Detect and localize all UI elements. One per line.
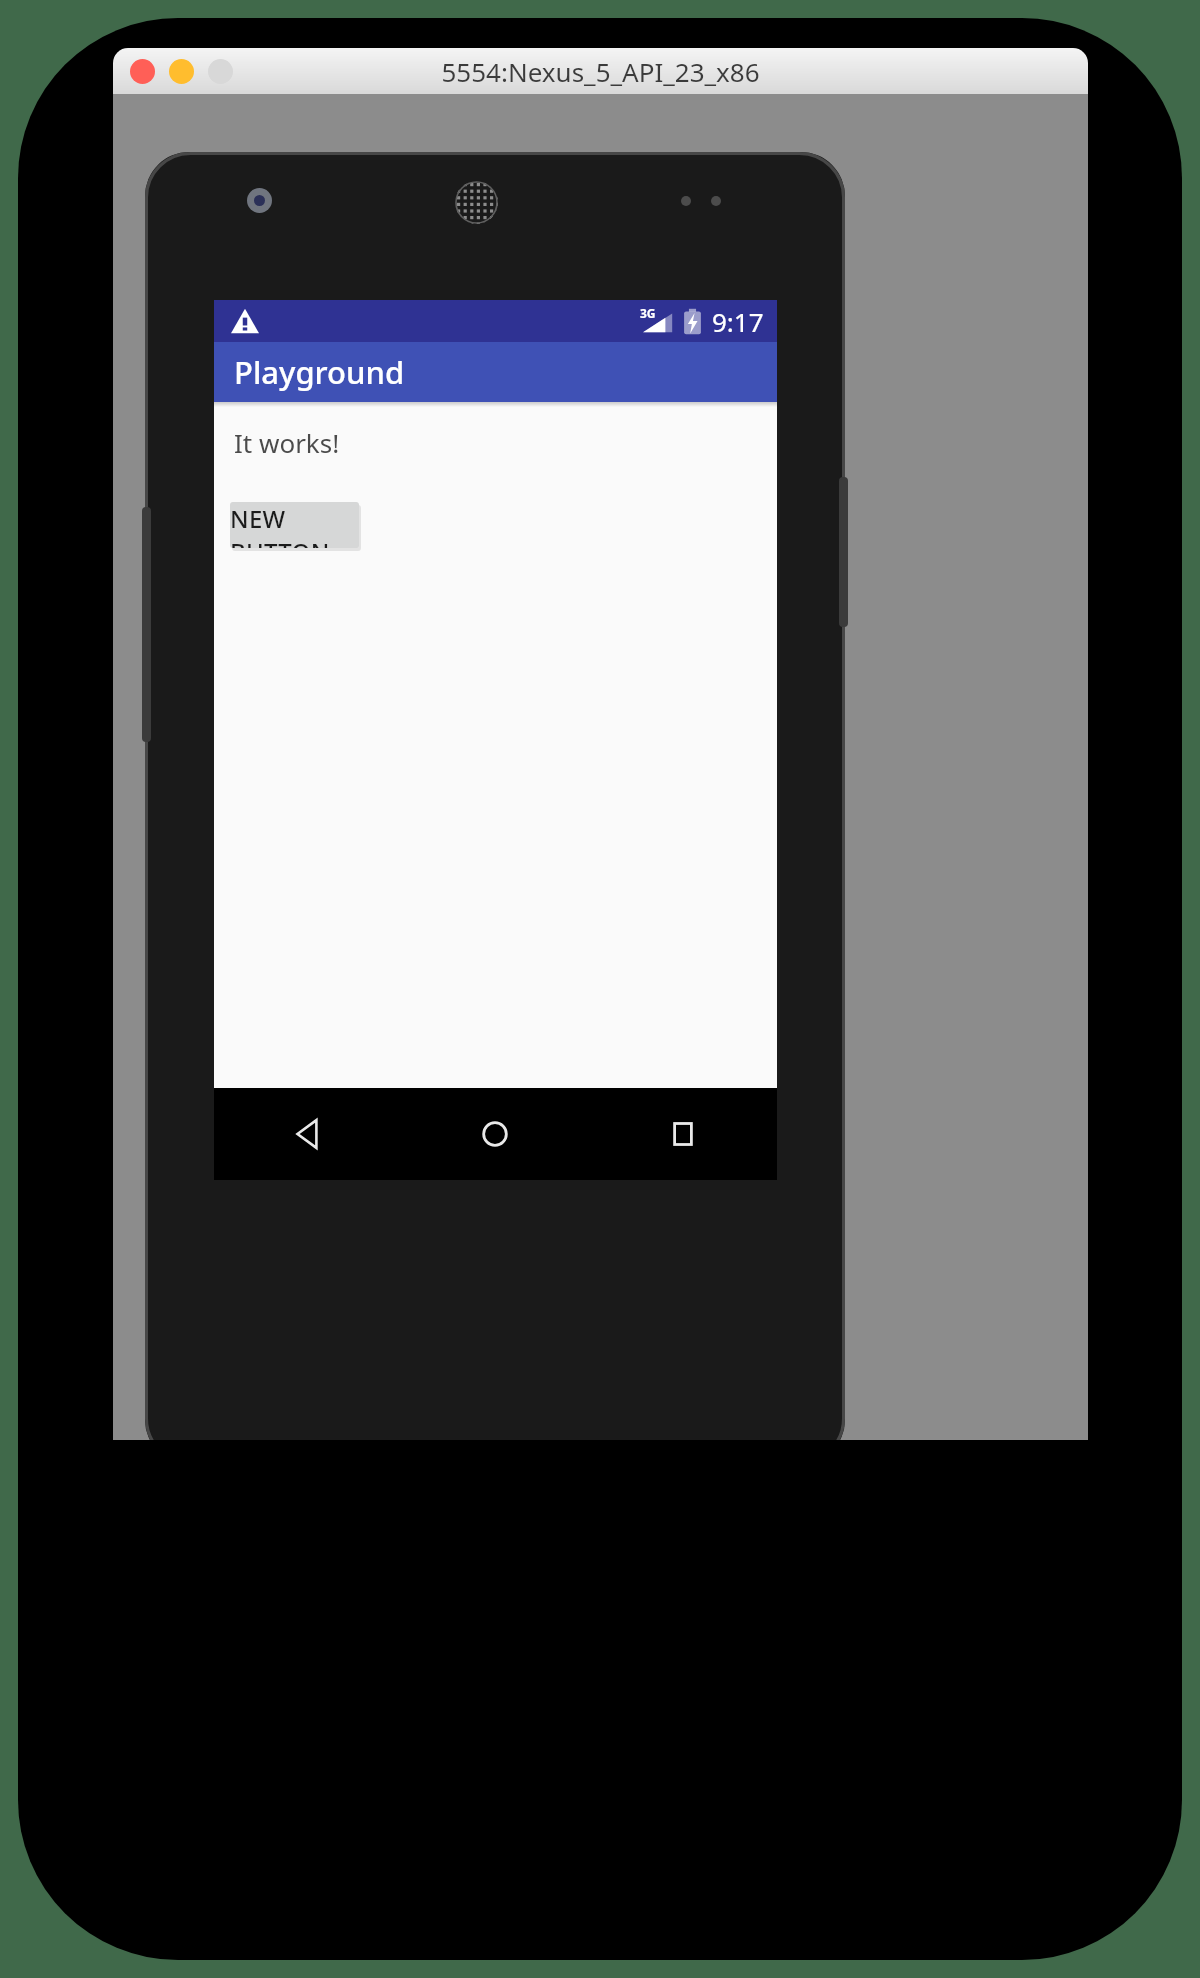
staticText: 9:17 <box>712 304 764 339</box>
button[interactable]: Back <box>214 1088 401 1180</box>
staticText: It works! <box>234 425 340 460</box>
staticText: Playground <box>234 351 405 393</box>
button[interactable]: Minimise <box>169 59 194 84</box>
staticText: 3G <box>640 305 656 321</box>
button[interactable]: Close <box>130 59 155 84</box>
staticText: NEW BUTTON <box>230 502 359 548</box>
button[interactable]: Recent apps <box>589 1088 777 1180</box>
button[interactable]: Zoom <box>208 59 233 84</box>
button[interactable]: Home <box>401 1088 589 1180</box>
staticText: 5554:Nexus_5_API_23_x86 <box>441 54 760 89</box>
button[interactable]: NEW BUTTON <box>230 502 359 548</box>
